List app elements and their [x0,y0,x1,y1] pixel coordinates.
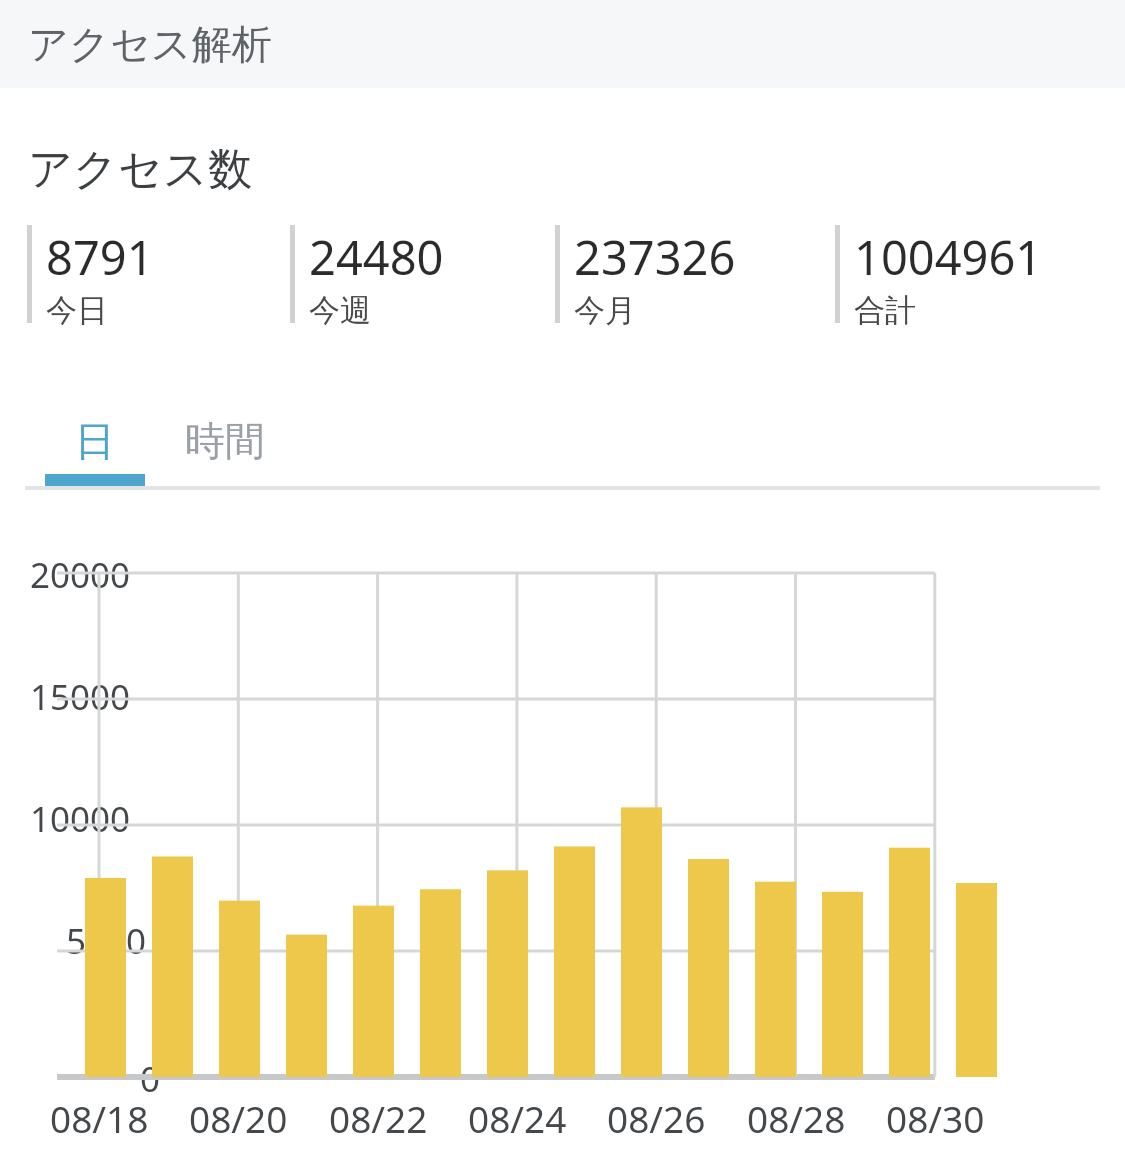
staticText: 08/24 [468,1093,567,1143]
staticText: 08/18 [50,1093,149,1143]
staticText: 合計 [854,291,916,327]
staticText: 0 [140,1055,161,1103]
button[interactable]: 日 [45,405,145,477]
staticText: 08/28 [747,1093,846,1143]
staticText: 08/26 [607,1093,706,1143]
staticText: 08/22 [329,1093,428,1143]
staticText: 今週 [309,291,371,327]
staticText: 日 [75,416,115,466]
staticText: 1004961 [854,225,1043,289]
staticText: 15000 [30,673,131,721]
staticText: 237326 [574,225,736,289]
staticText: 08/30 [886,1093,985,1143]
staticText: アクセス解析 [28,19,272,69]
staticText: 5000 [66,917,147,965]
staticText: 8791 [46,225,154,289]
staticText: 08/20 [189,1093,288,1143]
staticText: 時間 [185,416,265,466]
staticText: 今日 [46,291,108,327]
staticText: 今月 [574,291,636,327]
staticText: 24480 [309,225,444,289]
staticText: 10000 [30,795,131,843]
button[interactable]: 時間 [160,405,290,477]
button[interactable]: アクセス解析 [0,0,1125,88]
button[interactable]: 1004961 [835,225,1085,325]
button[interactable]: 24480 [290,225,540,325]
staticText: 20000 [30,551,131,599]
button[interactable]: 237326 [555,225,805,325]
staticText: アクセス数 [28,142,253,197]
button[interactable]: 8791 [27,225,277,325]
